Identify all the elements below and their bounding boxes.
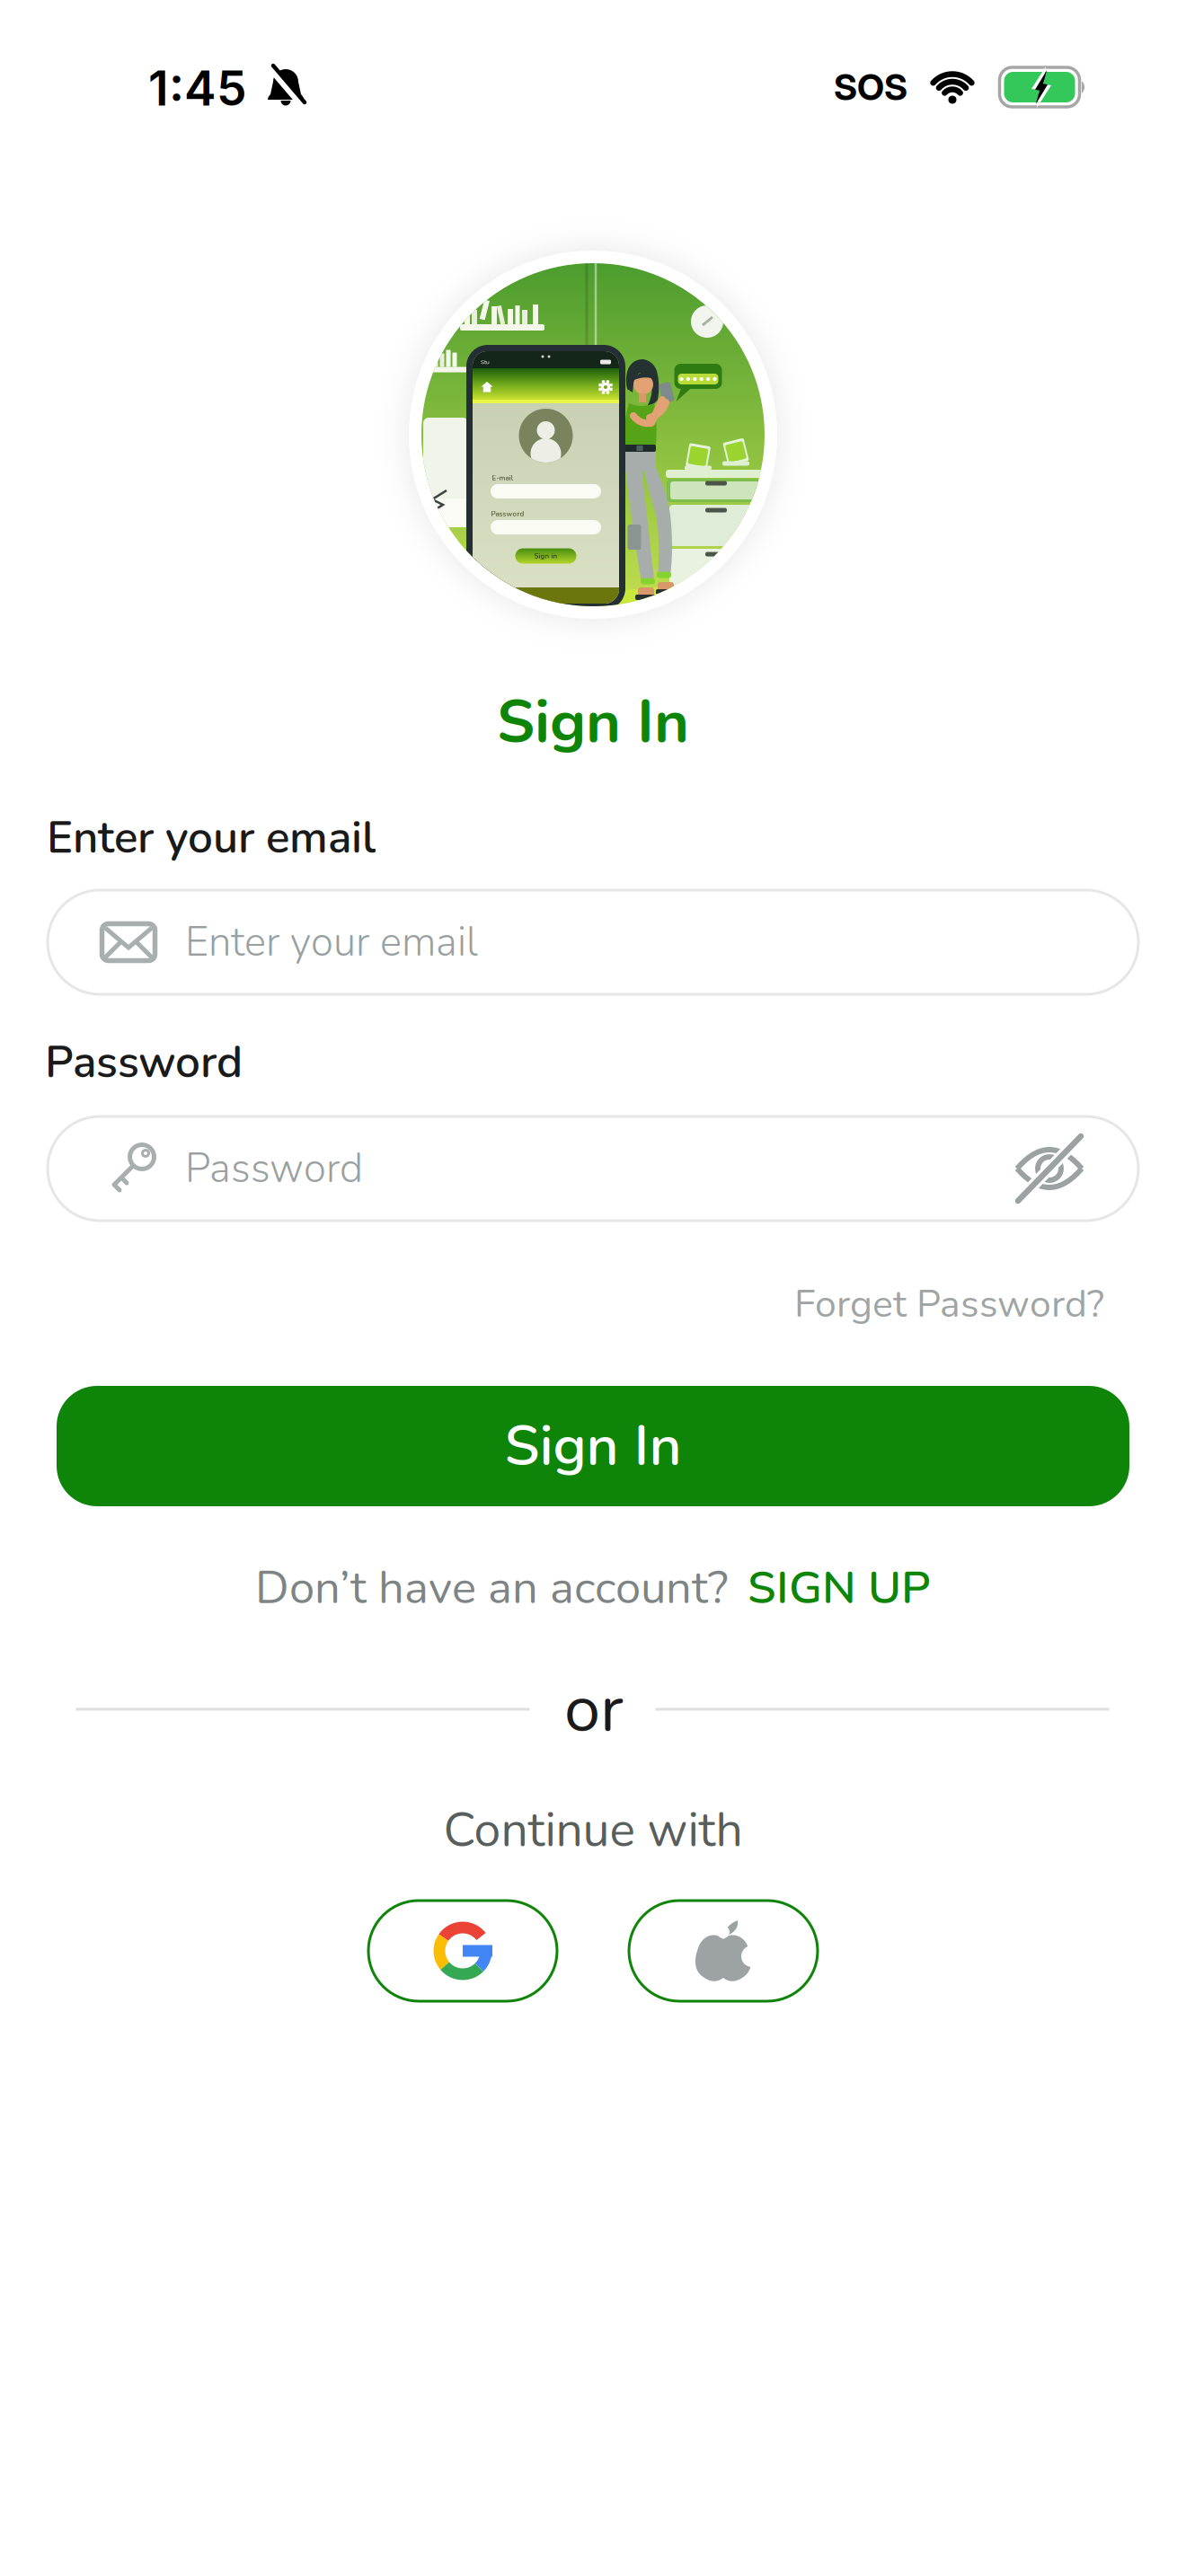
staticText: Sign in — [534, 551, 558, 561]
button[interactable]: Show password — [1015, 1140, 1084, 1197]
staticText: Don’t have an account? — [255, 1557, 728, 1619]
staticText: Sign In — [504, 1408, 682, 1485]
staticText: Enter your email — [185, 914, 478, 970]
staticText: Password — [185, 1141, 363, 1196]
staticText: Enter your email — [47, 808, 376, 868]
staticText: Continue with — [443, 1798, 743, 1863]
staticText: E-mail — [492, 473, 513, 483]
staticText: SOS — [834, 65, 907, 109]
staticText: Stu — [481, 358, 490, 366]
button[interactable]: Forget Password? — [794, 1278, 1104, 1330]
staticText: 1:45 — [148, 59, 247, 117]
staticText: Forget Password? — [794, 1278, 1104, 1330]
button[interactable]: Continue with Google — [368, 1901, 557, 2001]
staticText: Password — [45, 1032, 243, 1093]
staticText: Sign In — [497, 681, 689, 763]
staticText: or — [564, 1665, 624, 1753]
button[interactable]: Sign In — [57, 1386, 1129, 1506]
staticText: SIGN UP — [748, 1557, 931, 1619]
staticText: Password — [491, 509, 524, 519]
button[interactable]: SIGN UP — [748, 1557, 931, 1619]
button[interactable]: Continue with Apple — [629, 1901, 818, 2001]
